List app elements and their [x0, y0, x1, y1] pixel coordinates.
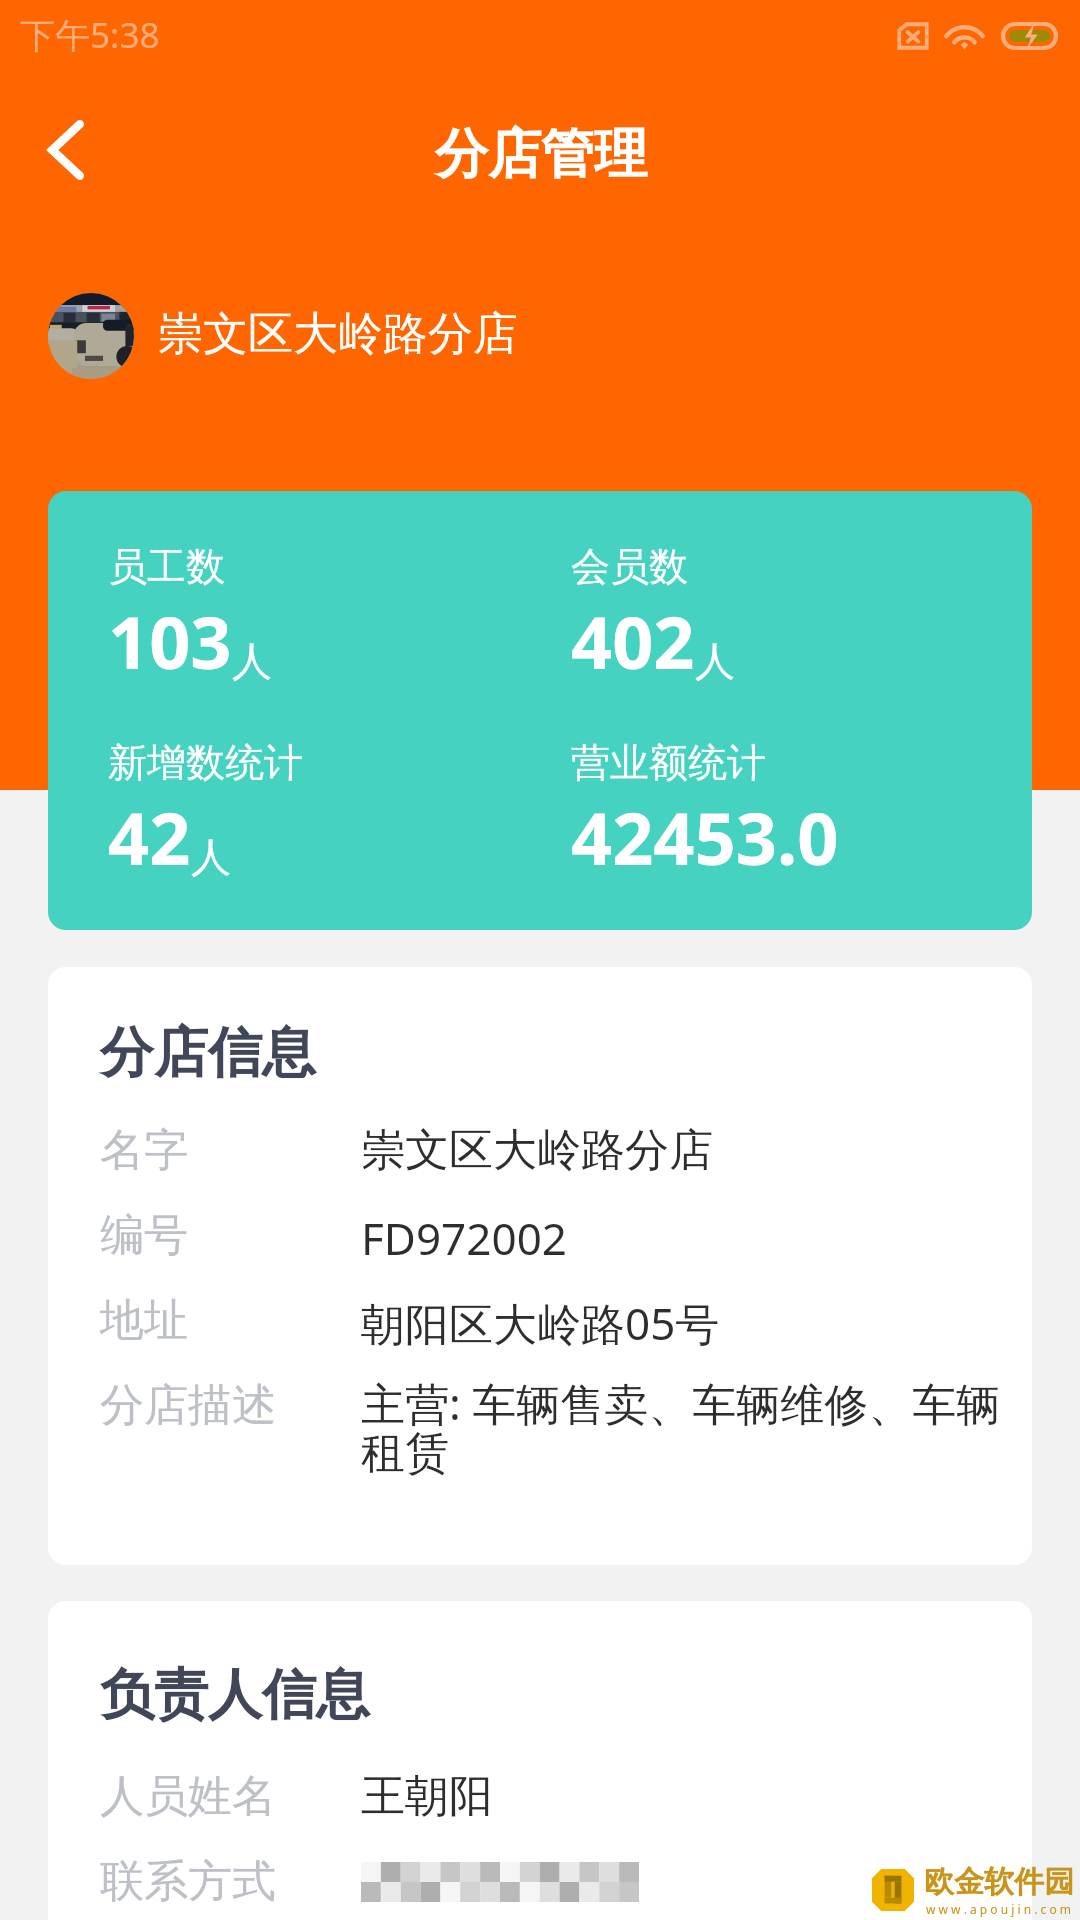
staticText: 下午5:38 [20, 11, 160, 59]
staticText: 王朝阳 [361, 1769, 1032, 1824]
button[interactable]: Back [16, 80, 116, 220]
button[interactable]: 编号 [48, 1208, 1032, 1268]
button[interactable]: 人员姓名 [48, 1769, 1032, 1824]
staticText: 103 [108, 592, 232, 690]
staticText: 分店管理 [435, 121, 647, 188]
staticText: 编号 [100, 1208, 188, 1263]
staticText: 人 [191, 832, 231, 882]
staticText: 402 [571, 592, 695, 690]
staticText: 人员姓名 [100, 1769, 276, 1824]
staticText: 人 [695, 636, 735, 686]
staticText: 分店描述 [100, 1378, 276, 1433]
button[interactable]: 地址 [48, 1293, 1032, 1353]
button[interactable]: 负责人信息 [48, 1601, 1032, 1920]
staticText: FD972002 [361, 1208, 1032, 1268]
button[interactable]: 崇文区大岭路分店 [48, 289, 518, 383]
button[interactable]: 名字 [48, 1123, 1032, 1178]
staticText: 人 [232, 636, 272, 686]
staticText: 员工数 [108, 542, 225, 591]
button[interactable]: 联系方式 [48, 1854, 1032, 1920]
staticText: 42 [108, 788, 191, 886]
staticText: 主营: 车辆售卖、车辆维修、车辆租赁 [361, 1373, 1032, 1481]
staticText: w w w . a p o u j i n . c o m [926, 1901, 1072, 1917]
staticText: 营业额统计 [571, 738, 766, 787]
button[interactable]: 员工数 [48, 491, 1032, 930]
staticText: 会员数 [571, 542, 688, 591]
staticText: 崇文区大岭路分店 [361, 1123, 1032, 1178]
button[interactable]: 分店信息 [48, 967, 1032, 1565]
staticText: 联系方式 [100, 1854, 276, 1909]
staticText: 42453.0 [571, 788, 839, 886]
staticText: 崇文区大岭路分店 [158, 306, 518, 363]
staticText: 分店信息 [100, 1019, 316, 1087]
button[interactable]: 分店描述 [48, 1373, 1032, 1481]
staticText: 欧金软件园 [924, 1863, 1074, 1901]
staticText: 朝阳区大岭路05号 [361, 1293, 1032, 1353]
staticText: 名字 [100, 1123, 188, 1178]
staticText: 新增数统计 [108, 738, 303, 787]
staticText: 负责人信息 [100, 1661, 370, 1729]
staticText: 地址 [100, 1293, 188, 1348]
